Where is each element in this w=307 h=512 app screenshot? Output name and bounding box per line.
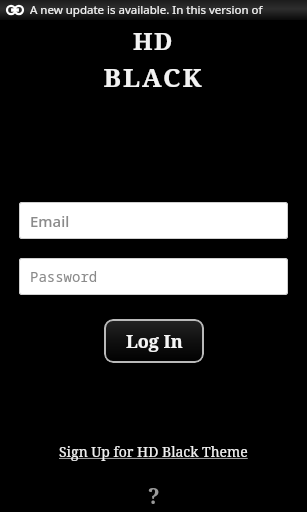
staticText: Password <box>30 267 98 286</box>
staticText: HD <box>0 24 307 57</box>
button[interactable]: Sign Up for HD Black Theme <box>53 440 254 463</box>
button[interactable]: Notification <box>0 0 307 20</box>
staticText: A new update is available. In this versi… <box>30 2 263 18</box>
staticText: BLACK <box>0 59 307 94</box>
button[interactable]: Log In <box>104 319 204 363</box>
staticText: Sign Up for HD Black Theme <box>59 442 248 461</box>
button[interactable]: Email <box>19 202 288 239</box>
other: Notification <box>6 4 24 16</box>
button[interactable]: Help <box>139 481 169 511</box>
button[interactable]: Password <box>19 258 288 295</box>
staticText: Log In <box>126 329 183 354</box>
staticText: ? <box>148 482 160 511</box>
staticText: Email <box>30 211 70 231</box>
